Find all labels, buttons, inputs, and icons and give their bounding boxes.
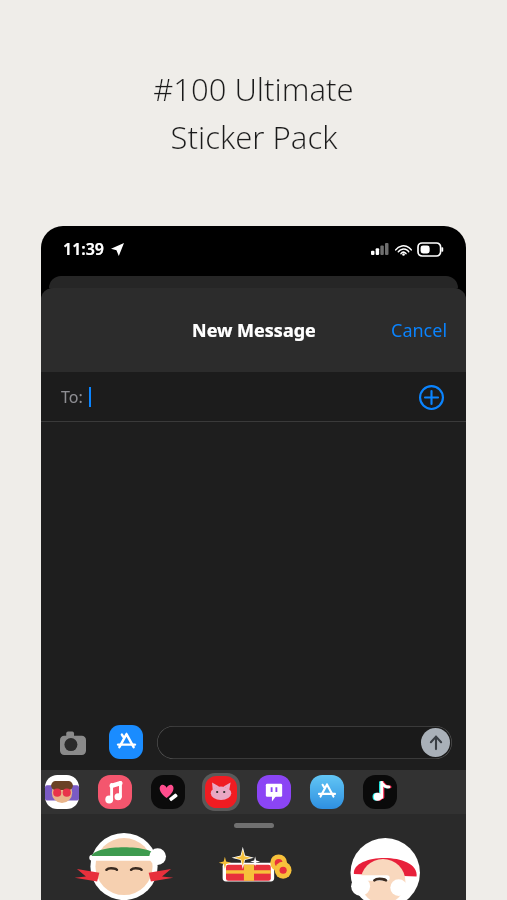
staticText: #100 Ultimate <box>153 68 354 110</box>
staticText: 11:39 <box>63 238 105 260</box>
button[interactable]: Cancel <box>373 308 466 353</box>
button[interactable]: Gift sticker <box>198 838 310 900</box>
staticText: Cancel <box>391 318 448 343</box>
staticText: Sticker Pack <box>170 116 338 158</box>
button[interactable]: App Store <box>308 773 346 811</box>
button[interactable]: Twitch <box>255 773 293 811</box>
button[interactable]: Elf sticker <box>68 838 180 900</box>
button[interactable]: App Store <box>109 725 143 759</box>
button[interactable]: Santa sticker <box>327 838 439 900</box>
button[interactable]: Send <box>421 728 450 757</box>
staticText: New Message <box>192 318 316 343</box>
button[interactable]: Memoji <box>43 773 81 811</box>
button[interactable]: Add contact <box>416 382 446 412</box>
staticText: To: <box>61 386 83 408</box>
button[interactable]: TikTok <box>361 773 399 811</box>
button[interactable]: To: <box>41 372 466 422</box>
button[interactable]: Apple Music <box>96 773 134 811</box>
button[interactable]: Fitness <box>149 773 187 811</box>
button[interactable]: Camera <box>55 724 91 760</box>
button[interactable]: Cat stickers <box>202 773 240 811</box>
button[interactable]: Send <box>157 726 452 759</box>
